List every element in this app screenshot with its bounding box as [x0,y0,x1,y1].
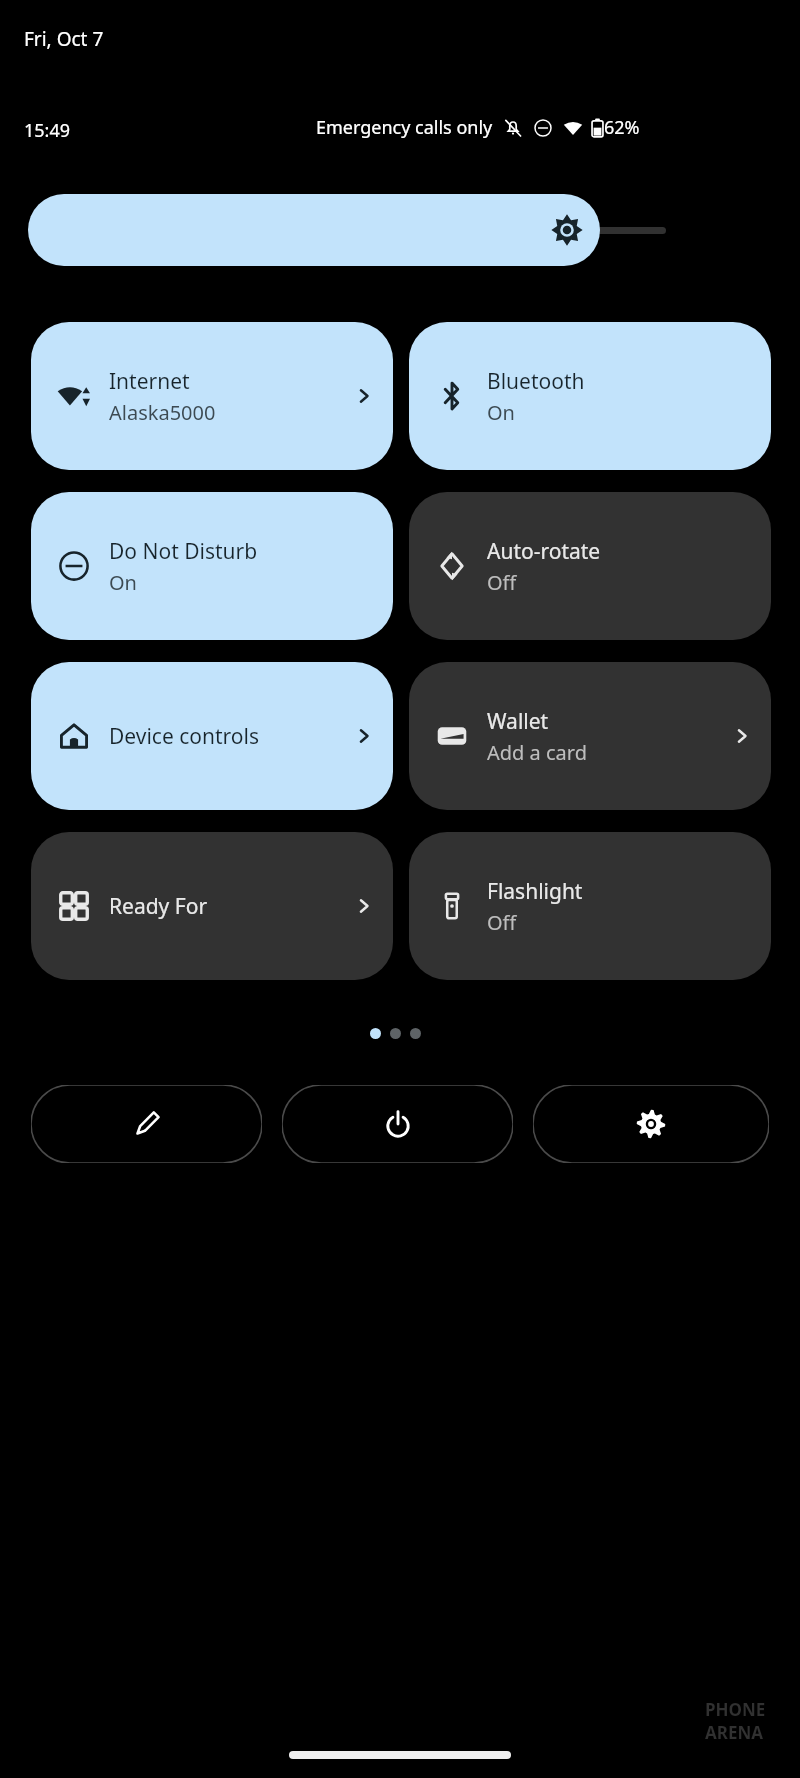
staticText: Fri, Oct 7 [24,26,104,52]
staticText: PHONE [705,1698,766,1721]
button[interactable]: Auto-rotate [409,492,771,640]
button[interactable]: Bluetooth [409,322,771,470]
staticText: Flashlight [487,877,583,906]
staticText: On [487,399,515,426]
staticText: Bluetooth [487,367,585,396]
button[interactable]: Do Not Disturb [31,492,393,640]
staticText: Ready For [109,892,208,921]
button[interactable]: Wallet [409,662,771,810]
staticText: Alaska5000 [109,399,216,426]
staticText: Off [487,909,517,936]
button[interactable]: Internet [31,322,393,470]
button[interactable]: Edit [31,1085,262,1163]
staticText: Off [487,569,517,596]
staticText: Internet [109,367,190,396]
button[interactable]: Settings [533,1085,769,1163]
button[interactable]: Power [282,1085,513,1163]
button[interactable]: Flashlight [409,832,771,980]
staticText: 15:49 [24,118,71,143]
button[interactable]: Ready For [31,832,393,980]
staticText: Do Not Disturb [109,537,258,566]
staticText: 62% [604,115,640,140]
staticText: Auto-rotate [487,537,601,566]
button[interactable]: Brightness [28,194,600,266]
staticText: Emergency calls only [316,115,493,140]
staticText: On [109,569,137,596]
staticText: Add a card [487,739,587,766]
staticText: Wallet [487,707,549,736]
staticText: ARENA [705,1721,764,1744]
button[interactable]: Device controls [31,662,393,810]
staticText: Device controls [109,722,260,751]
